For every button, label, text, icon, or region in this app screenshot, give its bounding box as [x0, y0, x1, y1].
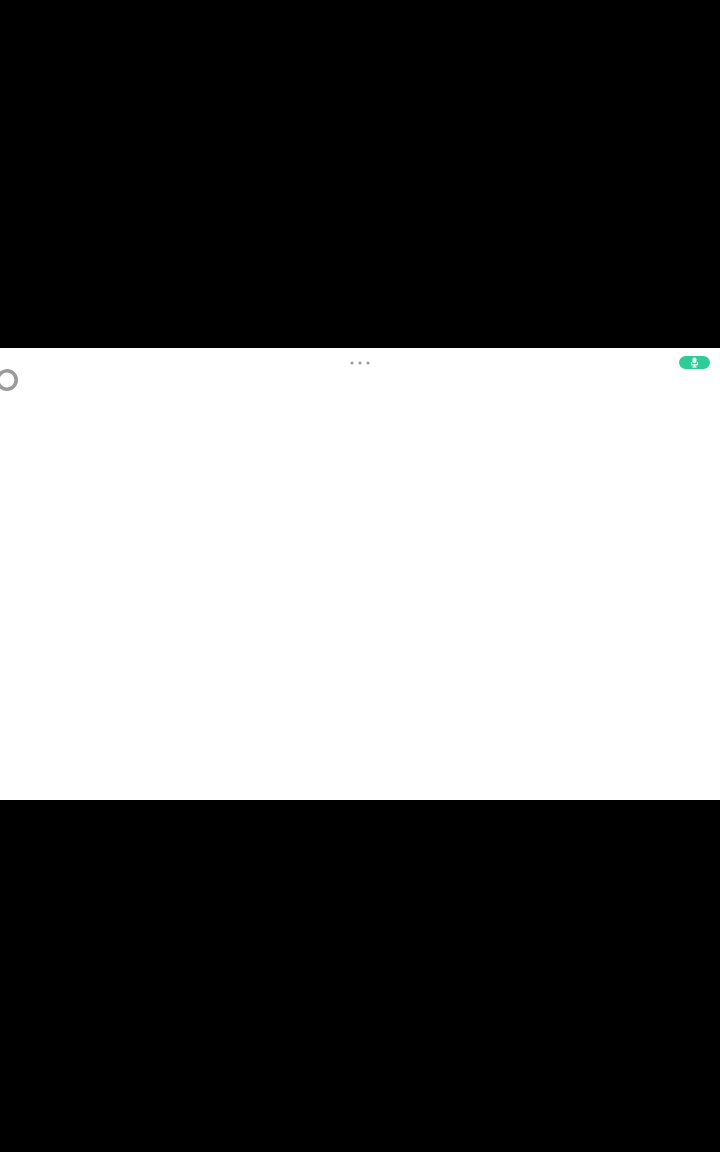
button[interactable]: Voice input — [679, 356, 710, 369]
button[interactable]: More options — [343, 353, 377, 373]
button[interactable]: Record — [0, 367, 20, 393]
